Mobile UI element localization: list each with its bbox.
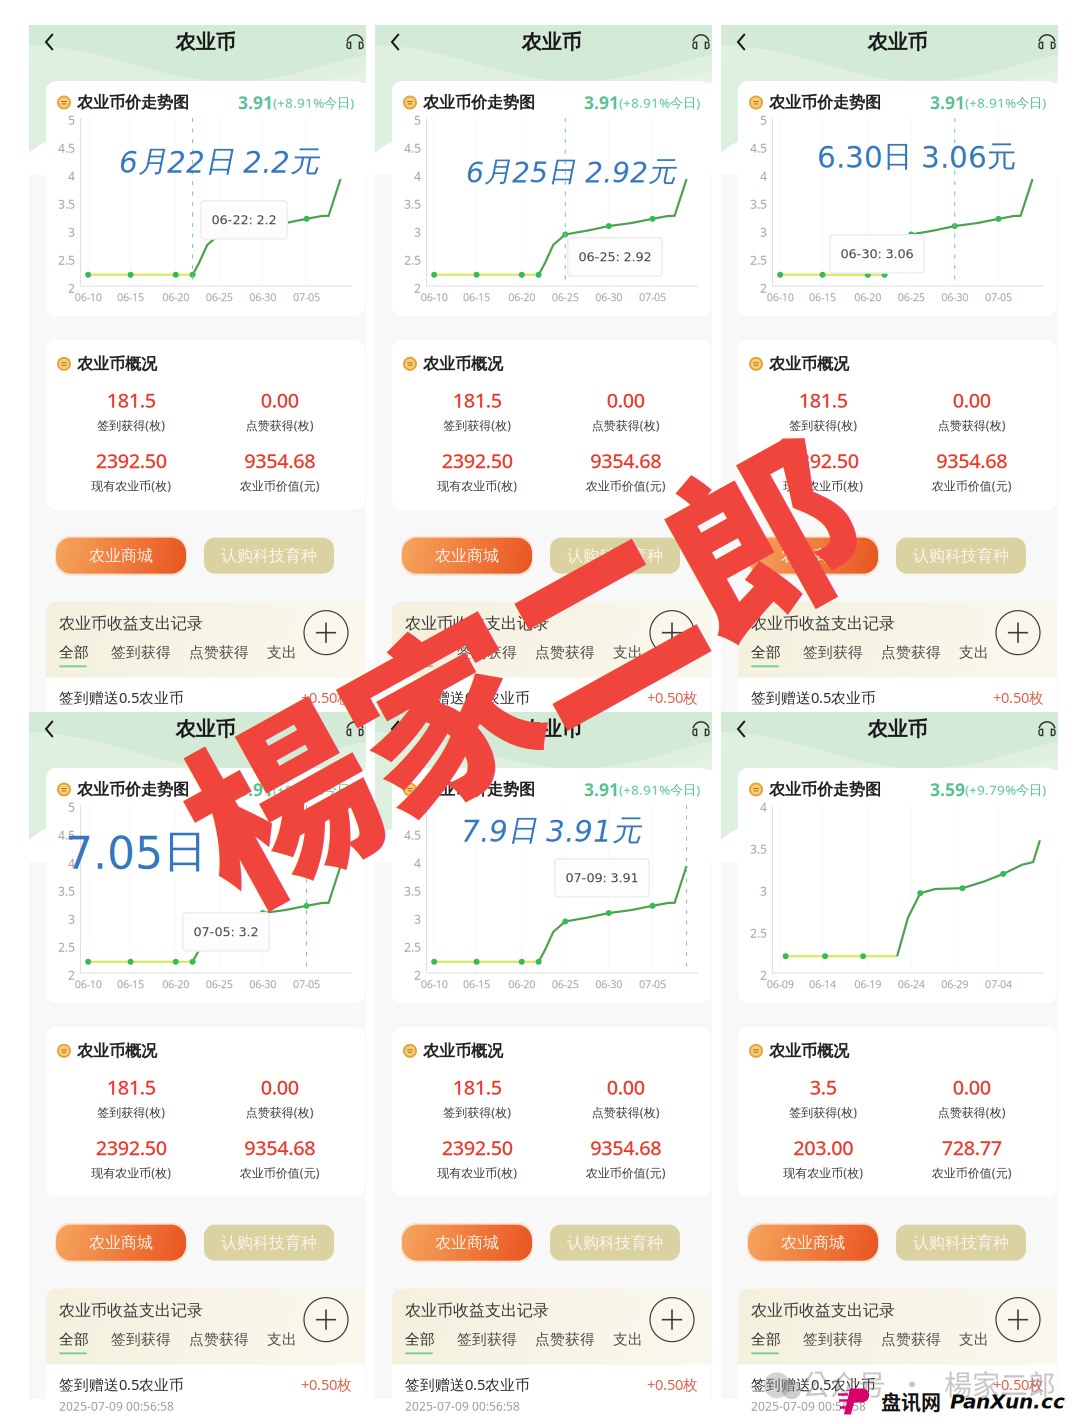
staticText: 3 bbox=[760, 883, 767, 899]
button[interactable]: Back bbox=[738, 29, 764, 55]
staticText: 签到赠送0.5农业币 bbox=[59, 1375, 184, 1394]
staticText: 06-10 bbox=[421, 290, 448, 304]
button[interactable]: 全部 bbox=[59, 643, 111, 667]
button[interactable]: 农业商城 bbox=[56, 538, 186, 574]
button[interactable]: 全部 bbox=[59, 1330, 111, 1354]
button[interactable]: 农业商城 bbox=[402, 538, 532, 574]
staticText: 点赞获得 bbox=[881, 1330, 941, 1348]
button[interactable]: 全部 bbox=[405, 1330, 457, 1354]
button[interactable]: 签到获得 bbox=[111, 1330, 189, 1354]
button[interactable]: 签到获得 bbox=[457, 1330, 535, 1354]
staticText: 06-20 bbox=[162, 977, 189, 991]
staticText: 签到获得 bbox=[457, 1330, 517, 1348]
button[interactable]: 支出 bbox=[959, 1330, 985, 1354]
staticText: 5 bbox=[760, 112, 767, 128]
button[interactable]: 认购科技育种 bbox=[896, 538, 1026, 574]
button[interactable]: Add record bbox=[304, 611, 348, 655]
button[interactable]: Add record bbox=[304, 1298, 348, 1342]
button[interactable]: Add record bbox=[996, 611, 1040, 655]
button[interactable]: Back bbox=[46, 716, 72, 742]
staticText: 06-22: 2.2 bbox=[211, 212, 276, 227]
button[interactable]: Back bbox=[738, 716, 764, 742]
button[interactable]: 支出 bbox=[613, 643, 639, 667]
button[interactable]: Customer support bbox=[1031, 29, 1057, 55]
staticText: 6月25日 2.92元 bbox=[466, 154, 676, 189]
button[interactable]: 点赞获得 bbox=[881, 1330, 959, 1354]
staticText: 0.00 bbox=[953, 387, 991, 413]
staticText: 06-20 bbox=[508, 290, 535, 304]
staticText: 4.5 bbox=[404, 827, 421, 843]
button[interactable]: 签到获得 bbox=[457, 643, 535, 667]
staticText: 06-25 bbox=[898, 290, 925, 304]
button[interactable]: Customer support bbox=[1031, 716, 1057, 742]
button[interactable]: Customer support bbox=[339, 716, 365, 742]
staticText: 9354.68 bbox=[244, 1134, 315, 1161]
staticText: 4.5 bbox=[750, 140, 767, 156]
staticText: 181.5 bbox=[799, 387, 848, 413]
button[interactable]: 支出 bbox=[267, 1330, 293, 1354]
staticText: 4 bbox=[68, 855, 75, 871]
button[interactable]: 支出 bbox=[267, 643, 293, 667]
staticText: 现有农业币(枚) bbox=[783, 1165, 863, 1181]
staticText: 3.91 bbox=[584, 91, 619, 114]
button[interactable]: 签到获得 bbox=[803, 1330, 881, 1354]
button[interactable]: 认购科技育种 bbox=[550, 1225, 680, 1261]
button[interactable]: 农业商城 bbox=[748, 538, 878, 574]
staticText: 农业币价值(元) bbox=[586, 478, 666, 494]
button[interactable]: 农业商城 bbox=[748, 1225, 878, 1261]
button[interactable]: 认购科技育种 bbox=[550, 538, 680, 574]
button[interactable]: Back bbox=[392, 716, 418, 742]
button[interactable]: 认购科技育种 bbox=[896, 1225, 1026, 1261]
button[interactable]: Back bbox=[392, 29, 418, 55]
button[interactable]: 农业商城 bbox=[402, 1225, 532, 1261]
staticText: 06-19 bbox=[854, 977, 881, 991]
button[interactable]: 点赞获得 bbox=[535, 1330, 613, 1354]
staticText: 07-04 bbox=[985, 977, 1012, 991]
button[interactable]: 点赞获得 bbox=[189, 643, 267, 667]
button[interactable]: 全部 bbox=[751, 1330, 803, 1354]
button[interactable]: Back bbox=[46, 29, 72, 55]
button[interactable]: Add record bbox=[650, 611, 694, 655]
staticText: 06-24 bbox=[898, 977, 925, 991]
staticText: 农业商城 bbox=[435, 546, 499, 565]
button[interactable]: Customer support bbox=[685, 29, 711, 55]
button[interactable]: 支出 bbox=[959, 643, 985, 667]
button[interactable]: 农业商城 bbox=[56, 1225, 186, 1261]
button[interactable]: 点赞获得 bbox=[881, 643, 959, 667]
staticText: PanXun.cc bbox=[950, 1390, 1065, 1413]
button[interactable]: 点赞获得 bbox=[535, 643, 613, 667]
staticText: 3.5 bbox=[750, 841, 767, 857]
staticText: 认购科技育种 bbox=[221, 1233, 317, 1252]
button[interactable]: 签到获得 bbox=[803, 643, 881, 667]
staticText: (+9.79%今日) bbox=[965, 781, 1046, 798]
staticText: 2 bbox=[760, 280, 767, 296]
staticText: +0.50枚 bbox=[647, 688, 698, 707]
staticText: 农业币价值(元) bbox=[932, 478, 1012, 494]
button[interactable]: Customer support bbox=[685, 716, 711, 742]
staticText: 06-30 bbox=[941, 290, 968, 304]
staticText: 5 bbox=[68, 112, 75, 128]
staticText: 2025-07-09 00:56:58 bbox=[405, 711, 520, 727]
staticText: 4 bbox=[68, 168, 75, 184]
staticText: 2392.50 bbox=[96, 447, 167, 474]
button[interactable]: 点赞获得 bbox=[189, 1330, 267, 1354]
button[interactable]: 全部 bbox=[405, 643, 457, 667]
button[interactable]: 认购科技育种 bbox=[204, 538, 334, 574]
staticText: 3.91 bbox=[930, 91, 965, 114]
staticText: 签到获得(枚) bbox=[443, 417, 511, 433]
button[interactable]: Add record bbox=[650, 1298, 694, 1342]
staticText: 公众号 · 楊家二郎 bbox=[802, 1363, 1056, 1403]
button[interactable]: 签到获得 bbox=[111, 643, 189, 667]
staticText: 5 bbox=[414, 112, 421, 128]
button[interactable]: Add record bbox=[996, 1298, 1040, 1342]
staticText: 181.5 bbox=[107, 387, 156, 413]
button[interactable]: Customer support bbox=[339, 29, 365, 55]
staticText: (+8.91%今日) bbox=[619, 94, 700, 111]
staticText: 点赞获得(枚) bbox=[938, 417, 1006, 433]
button[interactable]: 全部 bbox=[751, 643, 803, 667]
button[interactable]: 支出 bbox=[613, 1330, 639, 1354]
staticText: +0.50枚 bbox=[301, 1375, 352, 1394]
button[interactable]: 认购科技育种 bbox=[204, 1225, 334, 1261]
staticText: 全部 bbox=[751, 643, 781, 661]
staticText: 农业币 bbox=[175, 30, 235, 54]
